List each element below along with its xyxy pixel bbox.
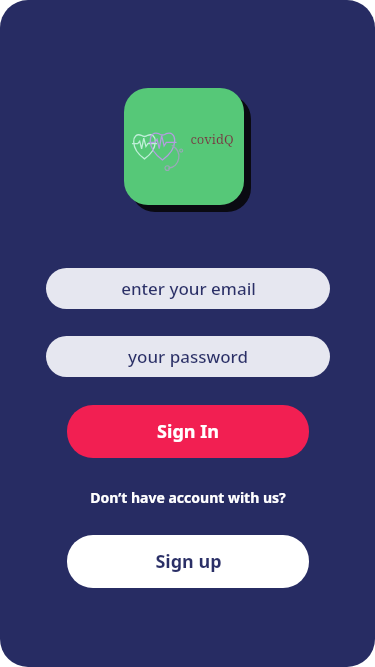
staticText: Sign up: [155, 549, 222, 574]
staticText: your password: [128, 345, 248, 368]
button[interactable]: your password: [46, 336, 330, 377]
staticText: enter your email: [121, 277, 256, 300]
button[interactable]: Sign up: [67, 535, 309, 588]
staticText: covidQ: [190, 130, 234, 148]
button[interactable]: Sign In: [67, 405, 309, 458]
staticText: Sign In: [157, 419, 219, 444]
staticText: Don’t have account with us?: [90, 488, 286, 507]
button[interactable]: enter your email: [46, 268, 330, 309]
